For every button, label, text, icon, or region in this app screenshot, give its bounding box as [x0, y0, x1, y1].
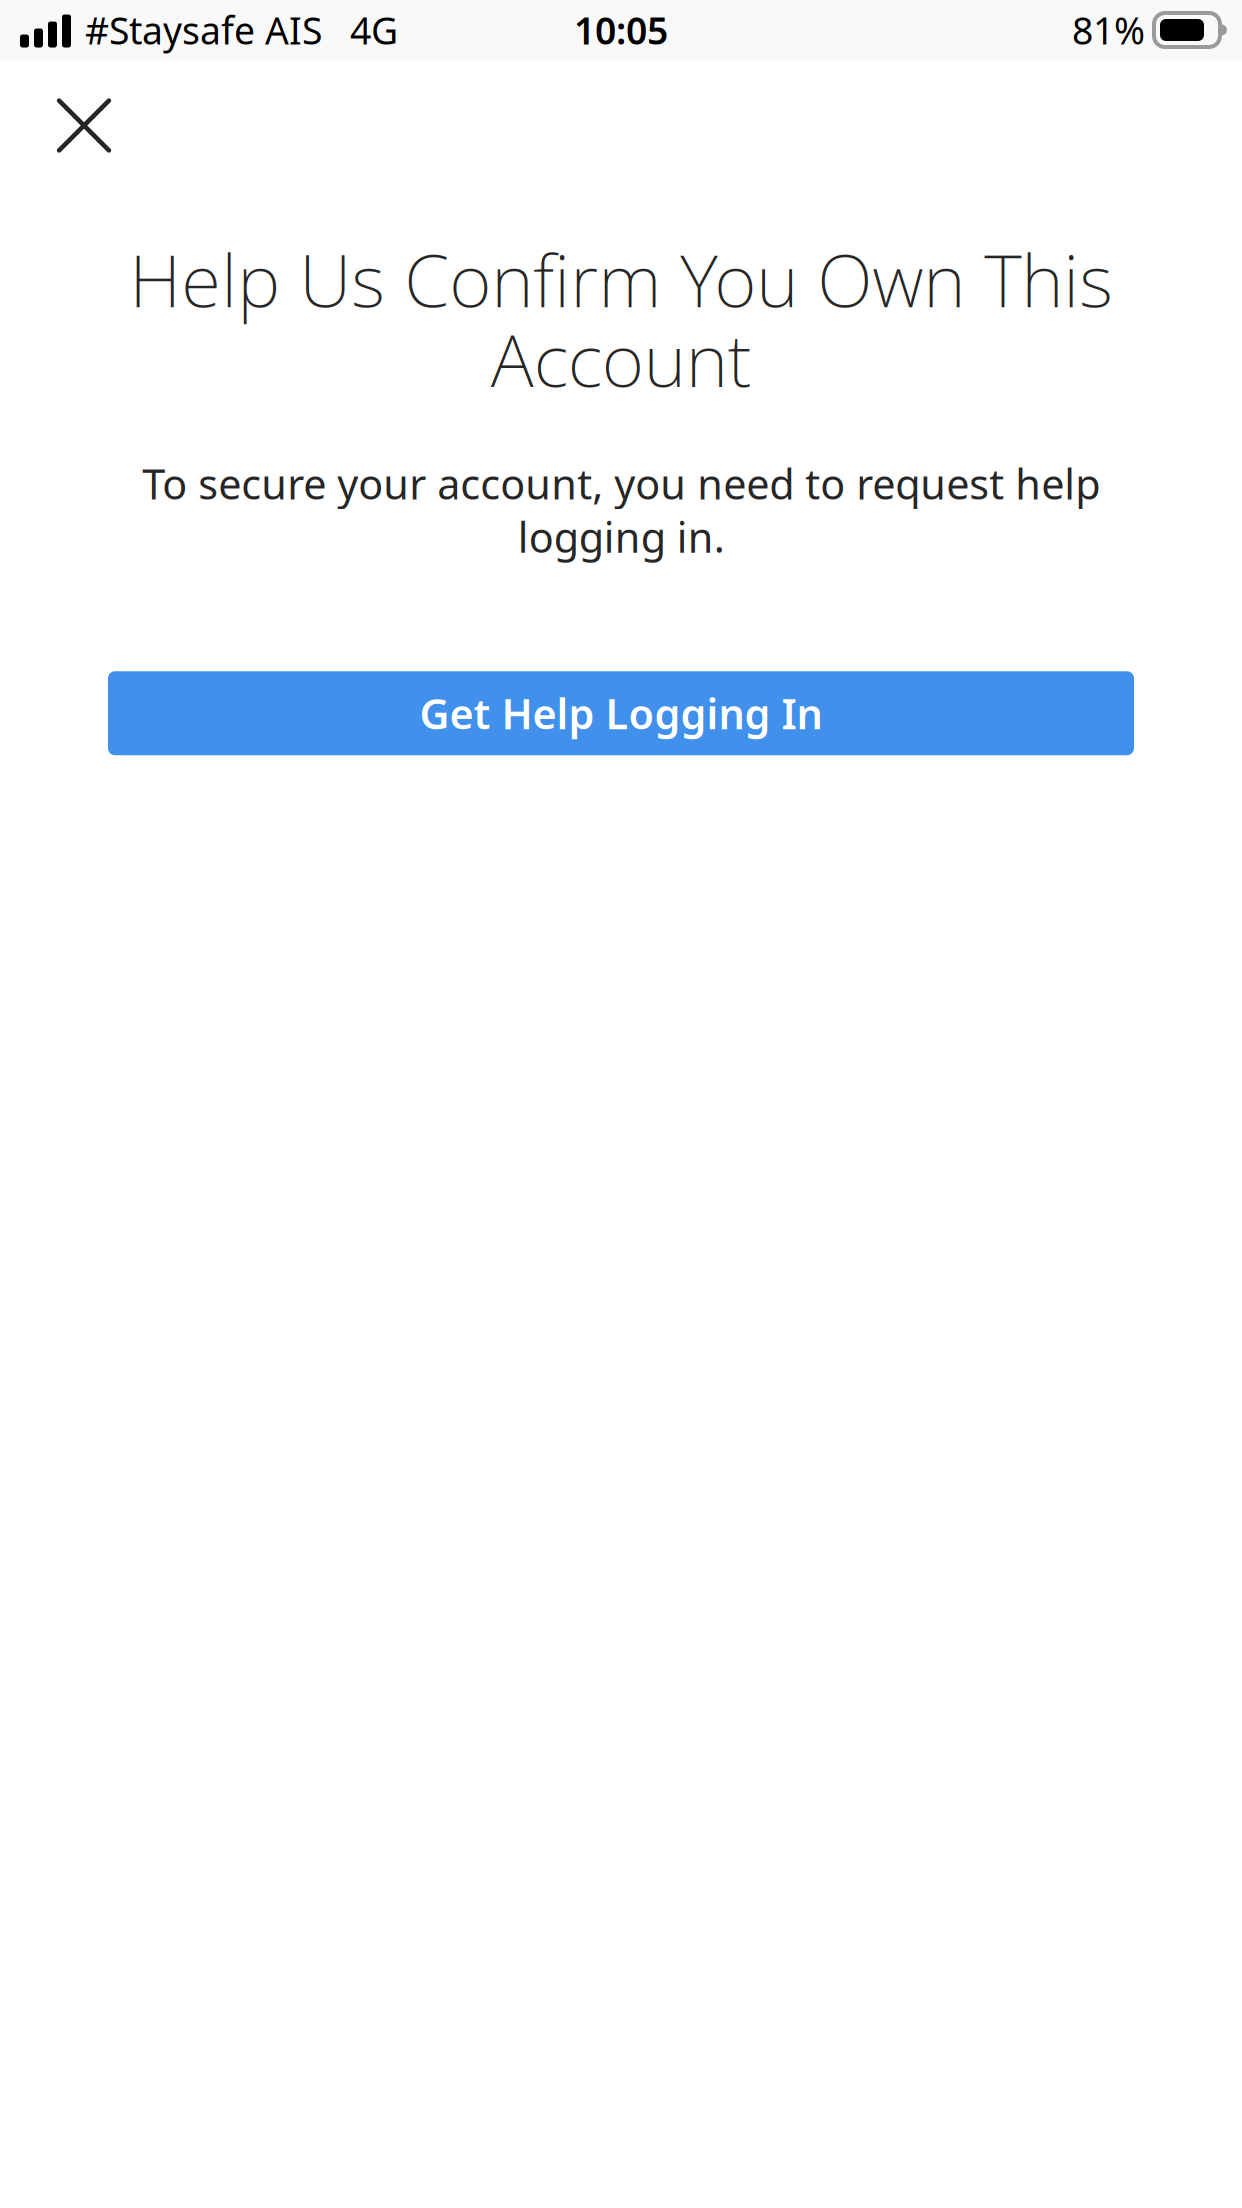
- staticText: 81%: [1072, 5, 1145, 55]
- staticText: To secure your account, you need to requ…: [142, 457, 1100, 563]
- button[interactable]: Close: [32, 73, 136, 177]
- staticText: #Staysafe AIS: [85, 5, 322, 55]
- staticText: 4G: [350, 5, 398, 55]
- staticText: Help Us Confirm You Own This Account: [129, 239, 1113, 399]
- staticText: Get Help Logging In: [419, 685, 822, 741]
- staticText: 10:05: [574, 5, 668, 55]
- button[interactable]: Get Help Logging In: [108, 671, 1134, 755]
